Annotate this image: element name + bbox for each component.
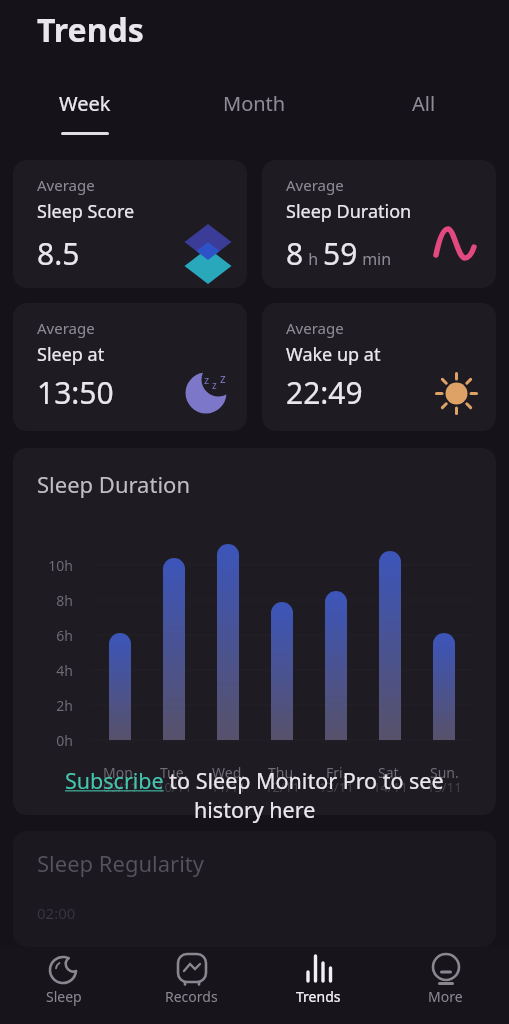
- staticText: 4h: [56, 661, 73, 680]
- staticText: Sleep at: [37, 342, 105, 367]
- button[interactable]: Average: [13, 160, 247, 288]
- staticText: Wake up at: [286, 342, 381, 367]
- staticText: Trends: [296, 987, 341, 1006]
- staticText: 11/11: [211, 778, 246, 796]
- staticText: Sleep Duration: [37, 469, 190, 499]
- staticText: Tue.: [160, 763, 188, 782]
- staticText: 09/11: [103, 778, 138, 796]
- staticText: Trends: [37, 8, 144, 52]
- button[interactable]: Average: [13, 303, 247, 431]
- staticText: Average: [286, 175, 344, 195]
- button[interactable]: Average: [262, 160, 496, 288]
- staticText: Records: [165, 987, 218, 1006]
- staticText: More: [428, 987, 463, 1006]
- staticText: 59: [323, 233, 358, 274]
- staticText: Mon.: [103, 763, 137, 782]
- staticText: Sleep Score: [37, 199, 135, 224]
- staticText: 8h: [56, 591, 73, 610]
- button[interactable]: Month: [169, 88, 339, 136]
- staticText: 12/11: [265, 778, 300, 796]
- staticText: 13/11: [319, 778, 354, 796]
- staticText: z: [212, 378, 217, 392]
- staticText: Month: [223, 90, 286, 117]
- staticText: Sat.: [378, 763, 403, 782]
- button[interactable]: Records: [128, 947, 255, 1024]
- staticText: history here: [194, 795, 316, 824]
- button[interactable]: Trends: [255, 947, 382, 1024]
- button[interactable]: More: [382, 947, 509, 1024]
- staticText: Sun.: [430, 763, 459, 782]
- staticText: Average: [37, 318, 95, 338]
- button[interactable]: All: [339, 88, 509, 136]
- staticText: Wed.: [212, 763, 245, 782]
- staticText: 10/11: [157, 778, 192, 796]
- staticText: h: [304, 248, 323, 270]
- staticText: Subscribe to Sleep Monitor Pro to see: [65, 766, 444, 795]
- staticText: 22:49: [286, 372, 363, 413]
- staticText: 2h: [56, 696, 73, 715]
- staticText: z: [220, 370, 226, 386]
- staticText: Average: [286, 318, 344, 338]
- staticText: Sleep: [46, 987, 82, 1006]
- staticText: 13:50: [37, 372, 114, 413]
- staticText: 10h: [48, 556, 73, 575]
- button[interactable]: Subscribe to Sleep Monitor Pro to see: [0, 766, 509, 824]
- button[interactable]: Week: [0, 88, 169, 136]
- staticText: 02:00: [37, 903, 76, 923]
- staticText: Average: [37, 175, 95, 195]
- staticText: Fri.: [326, 763, 347, 782]
- button[interactable]: Average: [262, 303, 496, 431]
- staticText: All: [412, 90, 436, 117]
- staticText: Sleep Regularity: [37, 848, 204, 878]
- staticText: Thu.: [268, 763, 297, 782]
- staticText: 0h: [56, 731, 73, 750]
- staticText: 8.5: [37, 233, 80, 274]
- staticText: Week: [59, 90, 111, 117]
- staticText: z: [204, 372, 210, 387]
- staticText: 15/11: [427, 778, 462, 796]
- staticText: 8: [286, 233, 304, 274]
- button[interactable]: Sleep: [0, 947, 128, 1024]
- staticText: 6h: [56, 626, 73, 645]
- staticText: 14/11: [373, 778, 408, 796]
- staticText: min: [358, 248, 392, 270]
- staticText: Sleep Duration: [286, 199, 412, 224]
